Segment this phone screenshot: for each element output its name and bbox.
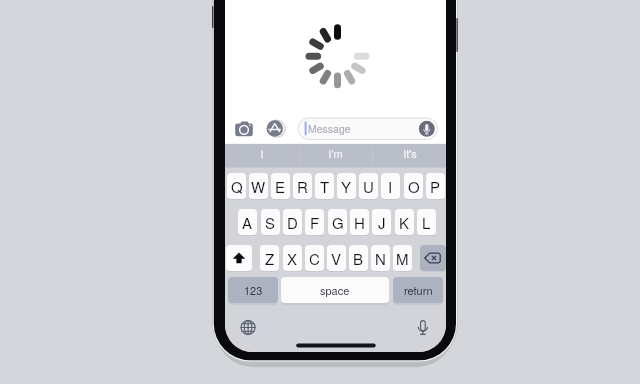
staticText: F bbox=[310, 212, 320, 233]
staticText: H bbox=[354, 212, 365, 233]
staticText: Y bbox=[341, 176, 352, 197]
button[interactable]: I bbox=[381, 173, 400, 199]
button[interactable]: X bbox=[283, 245, 302, 271]
staticText: O bbox=[408, 176, 420, 197]
staticText: V bbox=[331, 248, 342, 269]
button[interactable]: F bbox=[305, 209, 324, 235]
staticText: T bbox=[320, 176, 330, 197]
staticText: J bbox=[378, 212, 386, 233]
staticText: P bbox=[430, 176, 441, 197]
button[interactable]: J bbox=[372, 209, 391, 235]
button[interactable]: C bbox=[305, 245, 324, 271]
button[interactable]: G bbox=[328, 209, 347, 235]
staticText: W bbox=[251, 176, 266, 197]
button[interactable]: Z bbox=[260, 245, 279, 271]
staticText: B bbox=[353, 248, 364, 269]
button[interactable]: K bbox=[395, 209, 414, 235]
staticText: A bbox=[242, 212, 253, 233]
button[interactable]: E bbox=[271, 173, 290, 199]
staticText: S bbox=[265, 212, 276, 233]
button[interactable]: Q bbox=[227, 173, 246, 199]
staticText: K bbox=[399, 212, 410, 233]
button[interactable]: N bbox=[371, 245, 390, 271]
staticText: X bbox=[287, 248, 298, 269]
button[interactable]: W bbox=[249, 173, 268, 199]
staticText: L bbox=[422, 212, 431, 233]
button[interactable]: R bbox=[293, 173, 312, 199]
staticText: E bbox=[275, 176, 286, 197]
button[interactable]: U bbox=[359, 173, 378, 199]
button[interactable]: I bbox=[225, 144, 299, 168]
button[interactable]: App Store bbox=[267, 120, 284, 137]
button[interactable]: P bbox=[426, 173, 445, 199]
staticText: D bbox=[287, 212, 298, 233]
staticText: I'm bbox=[328, 145, 343, 161]
staticText: G bbox=[332, 212, 344, 233]
staticText: U bbox=[363, 176, 374, 197]
button[interactable]: L bbox=[417, 209, 436, 235]
staticText: C bbox=[309, 248, 320, 269]
staticText: return bbox=[404, 282, 433, 298]
staticText: Z bbox=[265, 248, 275, 269]
button[interactable]: O bbox=[404, 173, 423, 199]
button[interactable]: Message bbox=[298, 118, 437, 139]
button[interactable]: 123 bbox=[228, 277, 278, 303]
button[interactable]: Backspace bbox=[420, 245, 446, 271]
button[interactable]: V bbox=[327, 245, 346, 271]
button[interactable]: H bbox=[350, 209, 369, 235]
button[interactable]: A bbox=[238, 209, 257, 235]
button[interactable]: M bbox=[393, 245, 412, 271]
button[interactable]: S bbox=[261, 209, 280, 235]
button[interactable]: T bbox=[315, 173, 334, 199]
button[interactable]: return bbox=[393, 277, 443, 303]
staticText: It's bbox=[403, 145, 417, 161]
button[interactable]: Change keyboard language bbox=[238, 317, 257, 336]
staticText: 123 bbox=[244, 282, 263, 298]
button[interactable]: Dictation bbox=[414, 317, 433, 336]
staticText: Q bbox=[231, 176, 243, 197]
button[interactable]: space bbox=[281, 277, 389, 303]
staticText: N bbox=[375, 248, 386, 269]
staticText: Message bbox=[308, 121, 351, 136]
staticText: R bbox=[297, 176, 308, 197]
button[interactable]: Shift bbox=[226, 245, 252, 271]
button[interactable]: Record audio message bbox=[419, 121, 435, 137]
button[interactable]: Y bbox=[337, 173, 356, 199]
button[interactable]: It's bbox=[373, 144, 446, 168]
staticText: I bbox=[260, 145, 264, 161]
staticText: M bbox=[396, 248, 409, 269]
button[interactable]: D bbox=[283, 209, 302, 235]
button[interactable]: Camera bbox=[235, 120, 253, 137]
staticText: I bbox=[388, 176, 393, 197]
button[interactable]: I'm bbox=[299, 144, 372, 168]
staticText: space bbox=[320, 282, 350, 298]
button[interactable]: B bbox=[349, 245, 368, 271]
